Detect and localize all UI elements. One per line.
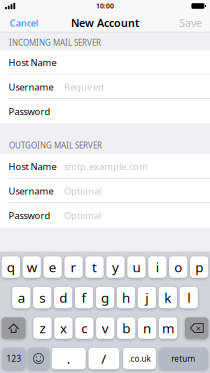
button[interactable]: y <box>106 256 125 278</box>
staticText: l <box>187 289 190 306</box>
staticText: w <box>27 258 37 276</box>
staticText: Username <box>9 185 54 197</box>
staticText: k <box>164 289 171 306</box>
button[interactable]: j <box>138 287 156 308</box>
staticText: Password <box>9 105 51 117</box>
button[interactable]: g <box>96 287 114 308</box>
button[interactable]: r <box>64 256 83 278</box>
button[interactable]: Cancel <box>0 13 44 32</box>
button[interactable]: Password <box>0 99 210 123</box>
button[interactable]: t <box>85 256 104 278</box>
staticText: q <box>7 258 15 276</box>
staticText: × <box>196 322 201 334</box>
button[interactable]: z <box>33 317 52 339</box>
staticText: smtp.example.com <box>64 160 148 173</box>
button[interactable]: Delete <box>185 317 208 339</box>
staticText: x <box>60 319 67 337</box>
staticText: c <box>81 319 87 337</box>
button[interactable]: k <box>159 287 177 308</box>
button[interactable]: .co.uk <box>123 348 156 369</box>
staticText: a <box>18 289 25 306</box>
button[interactable]: u <box>127 256 145 278</box>
staticText: OUTGOING MAIL SERVER <box>9 140 102 151</box>
staticText: Host Name <box>9 56 57 68</box>
staticText: u <box>132 258 140 276</box>
button[interactable]: v <box>96 317 114 339</box>
button[interactable]: i <box>148 256 166 278</box>
button[interactable]: m <box>159 317 177 339</box>
button[interactable]: Host Name <box>0 154 210 179</box>
button[interactable]: d <box>54 287 72 308</box>
button[interactable]: return <box>159 348 207 369</box>
staticText: m <box>162 319 174 337</box>
staticText: h <box>122 289 130 306</box>
staticText: Required <box>64 81 104 93</box>
button[interactable]: Password <box>0 203 210 228</box>
staticText: v <box>102 319 109 337</box>
button[interactable]: Shift <box>2 317 25 339</box>
staticText: t <box>92 258 97 276</box>
staticText: Host Name <box>9 160 57 173</box>
button[interactable]: Emoji <box>28 348 49 369</box>
staticText: 10:00 <box>96 2 114 10</box>
button[interactable]: / <box>89 348 119 369</box>
button[interactable]: s <box>33 287 51 308</box>
button[interactable]: p <box>190 256 208 278</box>
staticText: . <box>67 350 71 367</box>
staticText: f <box>82 289 87 306</box>
button[interactable]: o <box>169 256 187 278</box>
button[interactable]: c <box>75 317 93 339</box>
staticText: d <box>59 289 67 306</box>
button[interactable]: Host Name <box>0 50 210 74</box>
staticText: Optional <box>64 209 101 222</box>
staticText: z <box>39 319 45 337</box>
button[interactable]: a <box>12 287 30 308</box>
staticText: b <box>122 319 130 337</box>
staticText: g <box>101 289 109 306</box>
button[interactable]: l <box>180 287 198 308</box>
button[interactable]: . <box>52 348 86 369</box>
button[interactable]: f <box>75 287 93 308</box>
button[interactable]: b <box>117 317 135 339</box>
staticText: s <box>39 289 45 306</box>
staticText: .co.uk <box>128 353 150 364</box>
staticText: i <box>156 258 159 276</box>
button[interactable]: h <box>117 287 135 308</box>
staticText: Optional <box>64 185 101 197</box>
button[interactable]: Save <box>173 13 210 32</box>
button[interactable]: n <box>138 317 156 339</box>
staticText: / <box>101 350 106 367</box>
staticText: Password <box>9 209 51 222</box>
button[interactable]: Username <box>0 74 210 99</box>
staticText: Save <box>179 16 202 30</box>
staticText: Username <box>9 81 54 93</box>
button[interactable]: w <box>23 256 41 278</box>
staticText: 123 <box>6 353 21 364</box>
button[interactable]: x <box>54 317 72 339</box>
button[interactable]: q <box>2 256 20 278</box>
staticText: p <box>195 258 203 276</box>
button[interactable]: e <box>44 256 62 278</box>
staticText: n <box>143 319 151 337</box>
staticText: y <box>112 258 119 276</box>
staticText: j <box>145 289 148 306</box>
staticText: e <box>49 258 57 276</box>
staticText: INCOMING MAIL SERVER <box>9 37 101 48</box>
staticText: Cancel <box>10 17 38 29</box>
staticText: o <box>174 258 182 276</box>
button[interactable]: Username <box>0 179 210 203</box>
button[interactable]: 123 <box>3 348 25 369</box>
staticText: New Account <box>71 16 139 30</box>
staticText: return <box>171 353 195 364</box>
staticText: r <box>71 258 77 276</box>
